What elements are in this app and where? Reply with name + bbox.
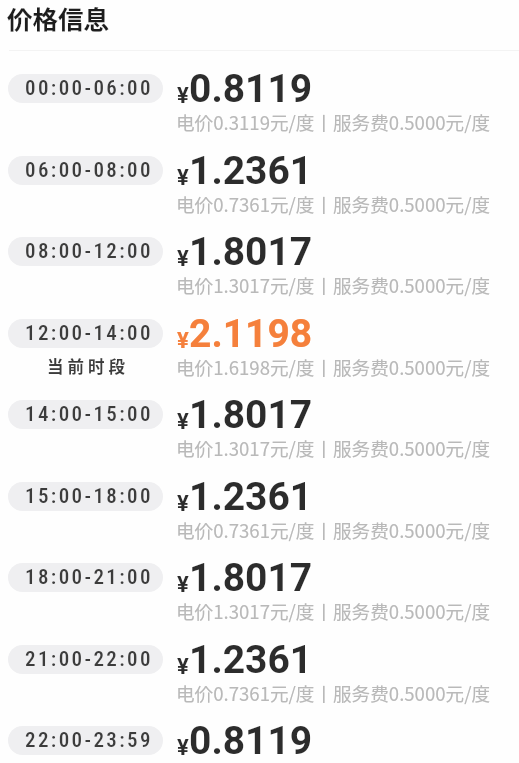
staticText: 0.8119 xyxy=(189,66,313,112)
button[interactable]: 18:00-21:00 xyxy=(0,551,519,633)
staticText: 1.2361 xyxy=(189,637,313,683)
staticText: ¥ xyxy=(177,409,189,435)
button[interactable]: 22:00-23:59 xyxy=(0,714,519,763)
staticText: ¥ xyxy=(177,491,189,517)
staticText: 价格信息 xyxy=(7,0,110,36)
staticText: 00:00-06:00 xyxy=(25,76,153,101)
staticText: 电价0.7361元/度丨服务费0.5000元/度 xyxy=(176,516,491,543)
button[interactable]: 15:00-18:00 xyxy=(0,470,519,552)
staticText: 电价0.7361元/度丨服务费0.5000元/度 xyxy=(176,679,491,706)
staticText: ¥ xyxy=(177,735,189,761)
staticText: ¥ xyxy=(177,654,189,680)
staticText: 电价1.6198元/度丨服务费0.5000元/度 xyxy=(176,353,491,380)
staticText: ¥ xyxy=(177,246,189,272)
button[interactable]: 21:00-22:00 xyxy=(0,633,519,715)
staticText: ¥ xyxy=(177,83,189,109)
staticText: 15:00-18:00 xyxy=(25,484,153,509)
staticText: ¥ xyxy=(177,572,189,598)
staticText: 1.2361 xyxy=(189,474,313,520)
button[interactable]: 14:00-15:00 xyxy=(0,388,519,470)
staticText: 08:00-12:00 xyxy=(25,239,153,264)
staticText: 电价1.3017元/度丨服务费0.5000元/度 xyxy=(176,597,491,624)
button[interactable]: 00:00-06:00 xyxy=(0,62,519,144)
staticText: 0.8119 xyxy=(189,718,313,763)
staticText: 18:00-21:00 xyxy=(25,565,153,590)
staticText: 当前时段 xyxy=(45,354,127,378)
button[interactable]: 06:00-08:00 xyxy=(0,144,519,226)
staticText: 电价1.3017元/度丨服务费0.5000元/度 xyxy=(176,271,491,298)
staticText: ¥ xyxy=(177,328,189,354)
staticText: 12:00-14:00 xyxy=(25,321,153,346)
staticText: 22:00-23:59 xyxy=(25,728,153,753)
staticText: 14:00-15:00 xyxy=(25,402,153,427)
staticText: 1.8017 xyxy=(189,229,313,275)
staticText: 1.2361 xyxy=(189,148,313,194)
staticText: 2.1198 xyxy=(189,311,313,357)
staticText: 电价0.7361元/度丨服务费0.5000元/度 xyxy=(176,190,491,217)
staticText: 电价1.3017元/度丨服务费0.5000元/度 xyxy=(176,434,491,461)
button[interactable]: 12:00-14:00 xyxy=(0,307,519,389)
staticText: ¥ xyxy=(177,165,189,191)
staticText: 1.8017 xyxy=(189,392,313,438)
button[interactable]: 08:00-12:00 xyxy=(0,225,519,307)
staticText: 21:00-22:00 xyxy=(25,647,153,672)
staticText: 06:00-08:00 xyxy=(25,158,153,183)
staticText: 电价0.3119元/度丨服务费0.5000元/度 xyxy=(176,108,491,135)
staticText: 1.8017 xyxy=(189,555,313,601)
